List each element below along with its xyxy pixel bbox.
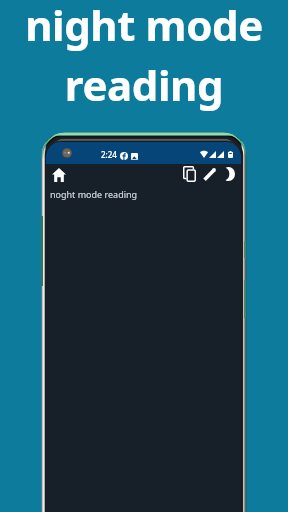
staticText: night mode	[0, 0, 288, 53]
button[interactable]: Edit	[199, 162, 220, 186]
staticText: 2:24	[101, 149, 117, 160]
staticText: reading	[0, 56, 288, 113]
button[interactable]: Home	[47, 163, 70, 187]
button[interactable]: Night mode	[220, 162, 241, 186]
staticText: noght mode reading	[50, 188, 138, 200]
button[interactable]: Tabs	[179, 162, 200, 186]
